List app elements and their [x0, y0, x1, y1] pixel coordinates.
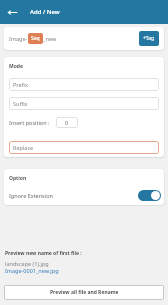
staticText: Image-0001_new.jpg [5, 267, 59, 274]
button[interactable]: Replace [9, 141, 159, 154]
staticText: _new [43, 35, 57, 42]
staticText: Preview all file and Rename [50, 289, 119, 296]
staticText: Suffix [13, 100, 28, 107]
staticText: Preview new name of first file : [5, 250, 82, 257]
button[interactable]: Preview all file and Rename [4, 285, 164, 300]
button[interactable]: Suffix [9, 97, 159, 110]
staticText: landscape (1).jpg [5, 260, 49, 267]
button[interactable]: 0 [56, 117, 78, 128]
staticText: Seq [31, 35, 40, 42]
staticText: Mode [9, 63, 23, 70]
staticText: Image- [9, 35, 28, 42]
staticText: Option [9, 175, 27, 182]
staticText: +Tag [143, 35, 155, 42]
staticText: 0 [65, 119, 69, 126]
button[interactable]: +Tag [139, 31, 159, 46]
button[interactable]: Seq [28, 33, 43, 44]
staticText: Insert position : [9, 119, 50, 126]
staticText: Ignore Extension [9, 192, 53, 199]
button[interactable]: Ignore Extension [9, 188, 161, 202]
staticText: Add / New [30, 8, 60, 16]
staticText: Replace [13, 144, 34, 151]
button[interactable]: Back [4, 4, 20, 20]
button[interactable]: Prefix [9, 78, 159, 91]
staticText: Prefix [13, 81, 28, 88]
